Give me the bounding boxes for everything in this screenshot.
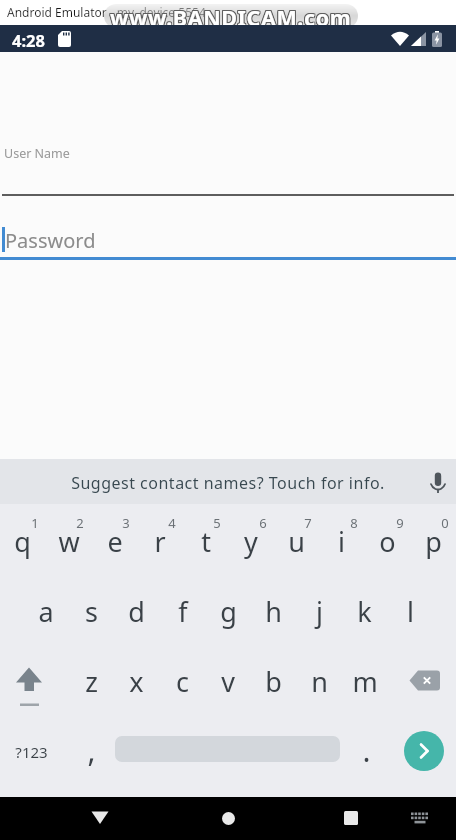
staticText: 1	[31, 514, 39, 530]
button[interactable]: z	[69, 651, 114, 711]
button[interactable]: .	[351, 730, 381, 770]
staticText: k	[357, 593, 372, 630]
staticText: g	[220, 593, 237, 630]
button[interactable]: d	[114, 581, 159, 641]
staticText: w	[58, 523, 80, 560]
button[interactable]: q	[0, 511, 45, 571]
staticText: o	[379, 523, 396, 560]
button[interactable]	[408, 808, 432, 828]
staticText: www.BANDICAM.com	[110, 4, 352, 30]
staticText: www.BANDICAM.com	[111, 2, 353, 28]
button[interactable]: w	[46, 511, 91, 571]
button[interactable]: t	[183, 511, 228, 571]
button[interactable]	[430, 470, 446, 495]
staticText: l	[407, 593, 414, 630]
staticText: www.BANDICAM.com	[110, 2, 352, 28]
staticText: 6	[259, 514, 267, 530]
staticText: www.BANDICAM.com	[110, 3, 352, 29]
button[interactable]: v	[205, 651, 250, 711]
staticText: s	[85, 593, 98, 630]
staticText: 5	[213, 514, 221, 530]
staticText: f	[178, 593, 188, 630]
button[interactable]	[0, 459, 456, 504]
staticText: www.BANDICAM.com	[109, 4, 351, 30]
button[interactable]: y	[228, 511, 273, 571]
staticText: 7	[304, 514, 312, 530]
button[interactable]: u	[274, 511, 319, 571]
button[interactable]: Password	[0, 220, 456, 260]
button[interactable]: x	[114, 651, 159, 711]
staticText: m	[352, 663, 378, 700]
staticText: h	[265, 593, 282, 630]
staticText: User Name	[4, 145, 70, 162]
staticText: Password	[5, 227, 96, 254]
button[interactable]: o	[365, 511, 410, 571]
staticText: www.BANDICAM.com	[111, 3, 353, 29]
staticText: y	[244, 523, 258, 560]
staticText: www.BANDICAM.com	[109, 2, 351, 28]
button[interactable]	[404, 731, 444, 771]
staticText: v	[221, 663, 235, 700]
staticText: t	[201, 523, 211, 560]
staticText: r	[154, 523, 166, 560]
staticText: j	[316, 593, 323, 630]
button[interactable]: h	[251, 581, 296, 641]
staticText: 2	[76, 514, 84, 530]
button[interactable]: n	[297, 651, 342, 711]
staticText: 0	[441, 514, 449, 530]
button[interactable]: r	[137, 511, 182, 571]
staticText: z	[85, 663, 98, 700]
staticText: b	[265, 663, 282, 700]
staticText: Suggest contact names? Touch for info.	[71, 472, 385, 494]
staticText: n	[311, 663, 328, 700]
staticText: 8	[350, 514, 358, 530]
button[interactable]: c	[160, 651, 205, 711]
staticText: 4:28	[12, 29, 45, 51]
button[interactable]	[14, 666, 46, 708]
button[interactable]: ?123	[1, 732, 61, 772]
button[interactable]: f	[160, 581, 205, 641]
button[interactable]: ,	[76, 730, 106, 770]
staticText: 9	[396, 514, 404, 530]
staticText: Android Emulator - my_device:5554	[7, 4, 206, 20]
staticText: x	[129, 663, 144, 700]
staticText: p	[425, 523, 442, 560]
button[interactable]	[339, 806, 363, 830]
staticText: e	[107, 523, 123, 560]
staticText: u	[288, 523, 305, 560]
button[interactable]: a	[23, 581, 68, 641]
button[interactable]: s	[69, 581, 114, 641]
button[interactable]	[409, 670, 441, 692]
button[interactable]: b	[251, 651, 296, 711]
staticText: 3	[122, 514, 130, 530]
button[interactable]: e	[92, 511, 137, 571]
staticText: q	[14, 523, 31, 560]
staticText: 4	[168, 514, 176, 530]
button[interactable]	[216, 806, 240, 830]
staticText: ,	[87, 730, 96, 770]
staticText: a	[38, 593, 54, 630]
staticText: .	[362, 730, 371, 770]
button[interactable]: k	[342, 581, 387, 641]
button[interactable]: m	[342, 651, 387, 711]
button[interactable]: g	[206, 581, 251, 641]
button[interactable]: i	[319, 511, 364, 571]
button[interactable]: User Name	[0, 140, 456, 194]
staticText: c	[176, 663, 189, 700]
staticText: d	[128, 593, 145, 630]
staticText: ?123	[15, 742, 48, 762]
button[interactable]	[88, 805, 112, 829]
button[interactable]: j	[297, 581, 342, 641]
staticText: www.BANDICAM.com	[109, 3, 351, 29]
button[interactable]: p	[411, 511, 456, 571]
button[interactable]: l	[388, 581, 433, 641]
staticText: i	[338, 523, 345, 560]
staticText: www.BANDICAM.com	[111, 4, 353, 30]
